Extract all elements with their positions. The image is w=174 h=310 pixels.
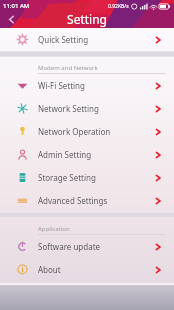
button[interactable]: Admin Setting	[0, 143, 174, 166]
staticText: Network Setting	[38, 103, 99, 114]
button[interactable]: Network Operation	[0, 120, 174, 143]
button[interactable]: Software update	[0, 235, 174, 258]
staticText: Wi-Fi Setting	[38, 80, 85, 91]
staticText: Storage Setting	[38, 172, 96, 183]
button[interactable]: Network Setting	[0, 97, 174, 120]
staticText: Quick Setting	[38, 34, 89, 45]
staticText: About	[38, 264, 61, 275]
button[interactable]: Storage Setting	[0, 166, 174, 189]
staticText: Application	[38, 225, 70, 233]
staticText: Setting	[0, 11, 174, 27]
staticText: Advanced Settings	[38, 195, 108, 206]
staticText: Admin Setting	[38, 149, 92, 160]
staticText: 0.92KB/s	[108, 3, 129, 10]
button[interactable]: Messages	[0, 281, 174, 304]
staticText: 11:01 AM	[3, 2, 30, 10]
button[interactable]: Back	[0, 11, 22, 27]
staticText: Network Operation	[38, 126, 111, 137]
button[interactable]: Quick Setting	[0, 28, 174, 51]
staticText: Modem and Network	[38, 64, 98, 72]
staticText: Messages	[38, 287, 76, 298]
button[interactable]: Advanced Settings	[0, 189, 174, 212]
button[interactable]: About	[0, 258, 174, 281]
button[interactable]: Wi-Fi Setting	[0, 74, 174, 97]
staticText: Software update	[38, 241, 101, 252]
